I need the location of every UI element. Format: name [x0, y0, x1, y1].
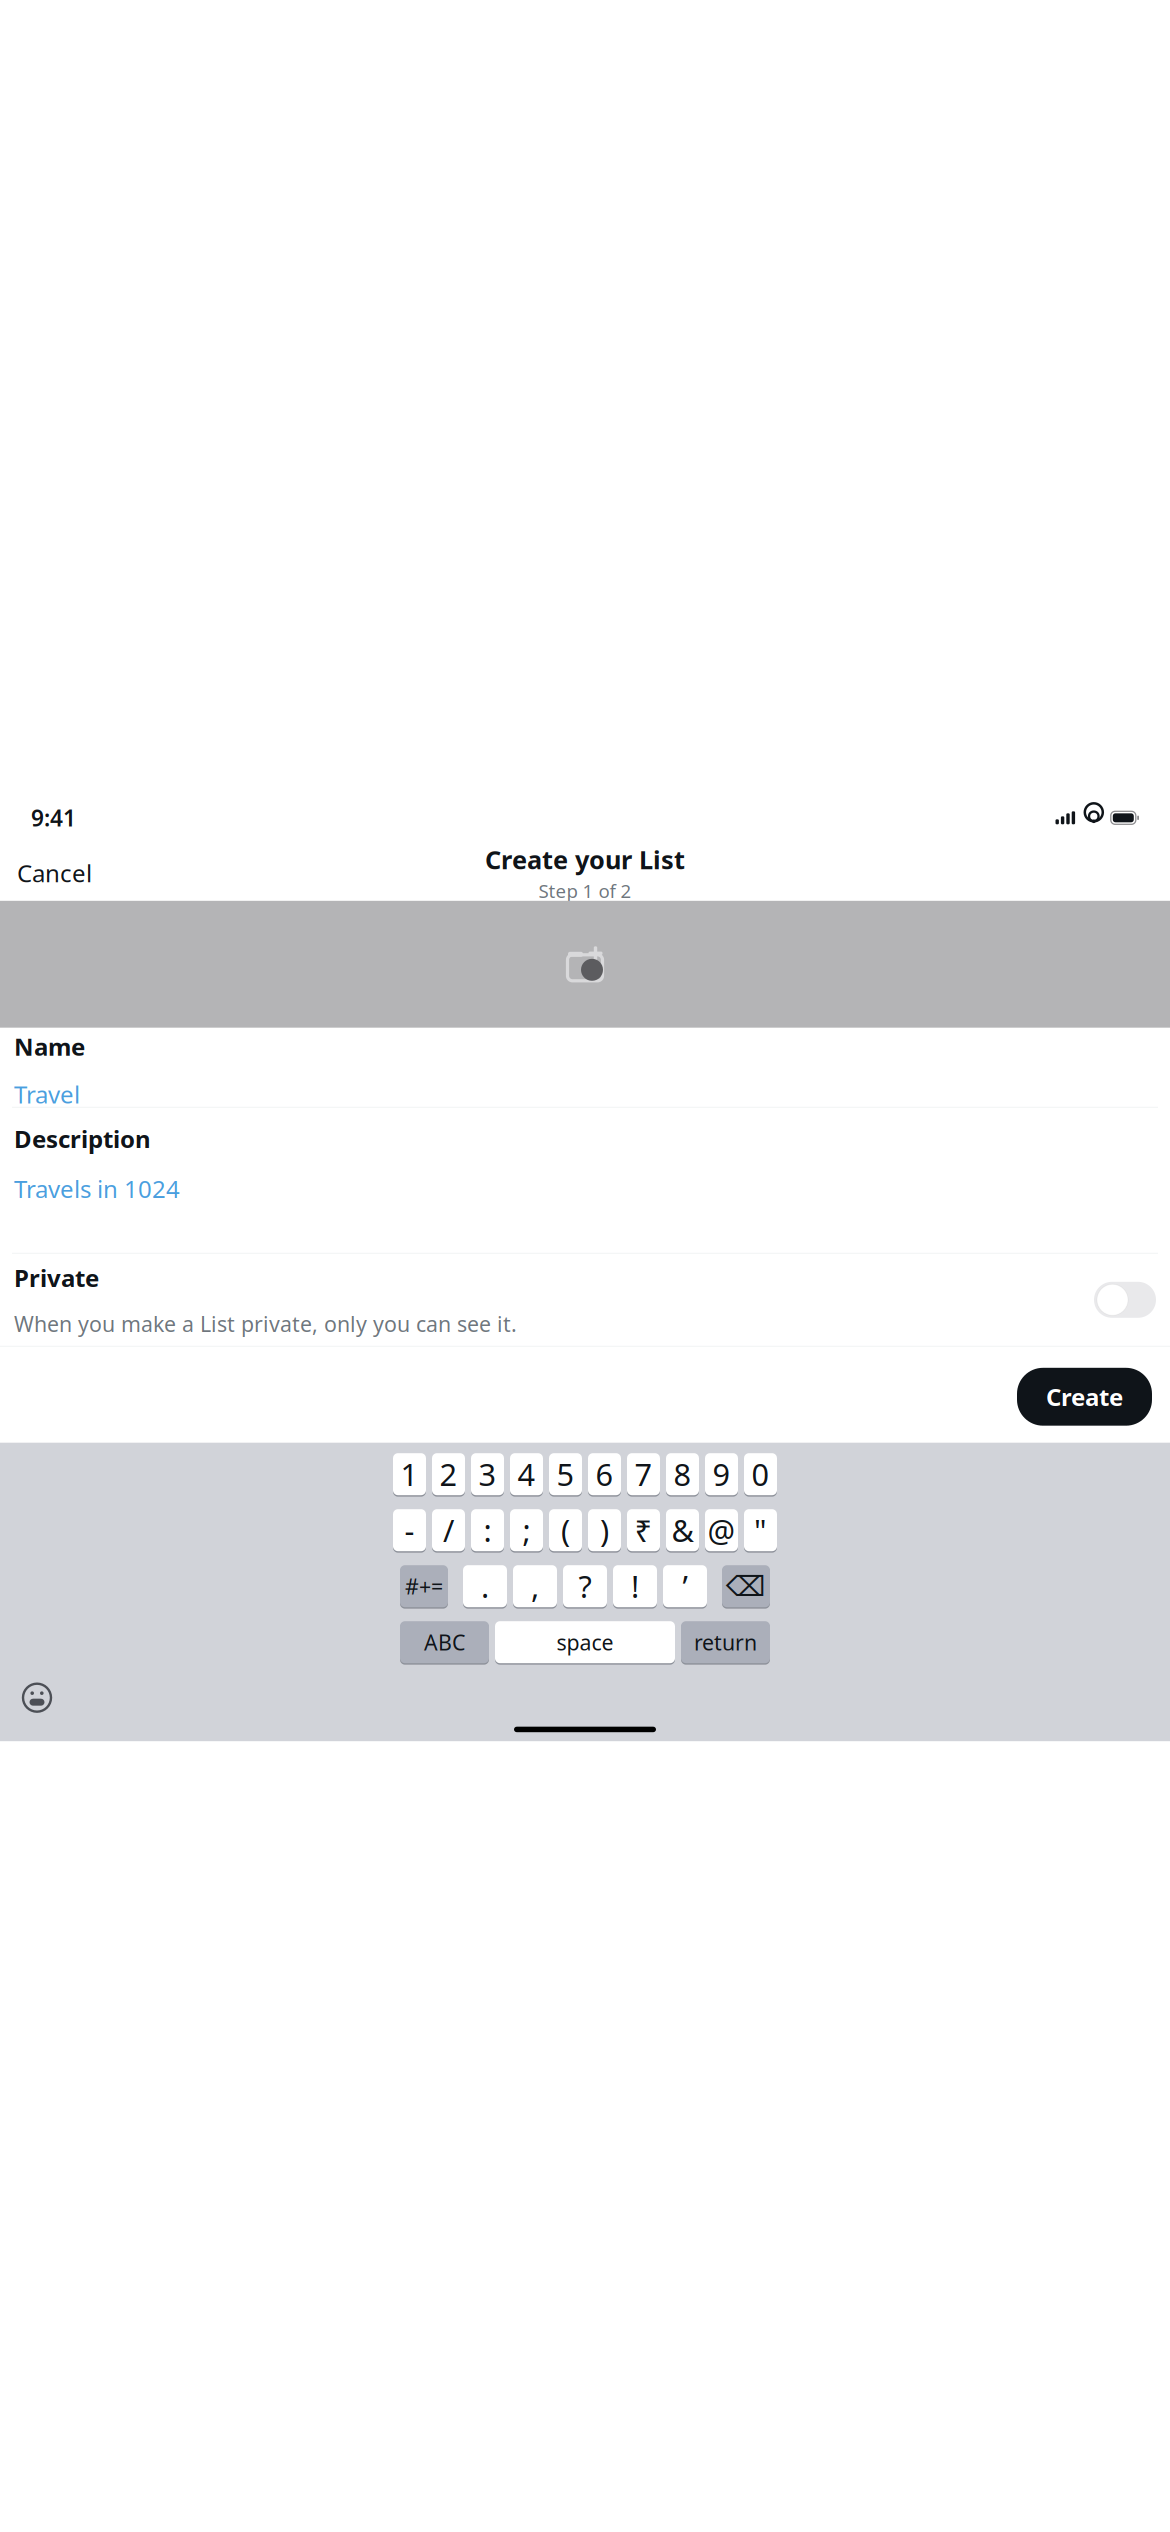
button[interactable]: Name	[0, 1028, 1170, 1107]
staticText: 6	[595, 1454, 613, 1494]
button[interactable]: return	[681, 1620, 770, 1665]
button[interactable]: Cancel	[3, 847, 106, 899]
button[interactable]: ?	[563, 1564, 607, 1609]
button[interactable]: Delete	[722, 1564, 770, 1609]
button[interactable]: 5	[549, 1452, 582, 1497]
staticText: @	[707, 1510, 735, 1550]
button[interactable]: 0	[744, 1452, 777, 1497]
staticText: "	[754, 1510, 767, 1550]
staticText: #+=	[405, 1572, 443, 1600]
button[interactable]: "	[744, 1508, 777, 1553]
button[interactable]: Add cover photo	[0, 901, 1170, 1028]
button[interactable]: Create	[1017, 1368, 1152, 1426]
button[interactable]: .	[463, 1564, 507, 1609]
staticText: ₹	[634, 1510, 652, 1550]
button[interactable]: Emoji keyboard	[16, 1677, 58, 1719]
button[interactable]: 3	[471, 1452, 504, 1497]
button[interactable]: )	[588, 1508, 621, 1553]
button[interactable]: ,	[513, 1564, 557, 1609]
button[interactable]: -	[393, 1508, 426, 1553]
button[interactable]: !	[613, 1564, 657, 1609]
button[interactable]: space	[495, 1620, 675, 1665]
button[interactable]: 4	[510, 1452, 543, 1497]
button[interactable]: 7	[627, 1452, 660, 1497]
staticText: ’	[682, 1566, 687, 1606]
staticText: .	[481, 1566, 489, 1606]
staticText: Description	[14, 1123, 151, 1155]
staticText: Create	[1046, 1381, 1123, 1413]
button[interactable]: 8	[666, 1452, 699, 1497]
staticText: -	[404, 1510, 414, 1550]
button[interactable]: /	[432, 1508, 465, 1553]
staticText: &	[671, 1510, 693, 1550]
button[interactable]: (	[549, 1508, 582, 1553]
button[interactable]: 6	[588, 1452, 621, 1497]
staticText: 4	[517, 1454, 535, 1494]
staticText: Travel	[14, 1078, 80, 1110]
button[interactable]: ₹	[627, 1508, 660, 1553]
staticText: 5	[556, 1454, 574, 1494]
staticText: 0	[751, 1454, 769, 1494]
staticText: When you make a List private, only you c…	[14, 1310, 517, 1338]
staticText: )	[600, 1510, 609, 1550]
staticText: Cancel	[17, 857, 92, 889]
button[interactable]: Private	[0, 1254, 1170, 1346]
staticText: :	[483, 1510, 491, 1550]
button[interactable]: ABC	[400, 1620, 489, 1665]
staticText: 9:41	[31, 803, 76, 833]
staticText: /	[443, 1510, 454, 1550]
button[interactable]: Description	[0, 1108, 1170, 1253]
staticText: (	[561, 1510, 570, 1550]
staticText: 3	[478, 1454, 496, 1494]
staticText: Private	[14, 1262, 99, 1294]
button[interactable]: :	[471, 1508, 504, 1553]
staticText: 7	[634, 1454, 652, 1494]
staticText: ?	[578, 1566, 591, 1606]
button[interactable]: 1	[393, 1452, 426, 1497]
button[interactable]: ;	[510, 1508, 543, 1553]
staticText: ABC	[424, 1628, 465, 1656]
staticText: Step 1 of 2	[538, 878, 631, 903]
staticText: return	[694, 1628, 757, 1656]
staticText: 1	[400, 1454, 418, 1494]
staticText: 9	[712, 1454, 730, 1494]
staticText: Create your List	[485, 843, 685, 876]
staticText: !	[631, 1566, 639, 1606]
staticText: Travels in 1024	[14, 1173, 180, 1205]
staticText: Name	[14, 1030, 85, 1062]
staticText: ;	[522, 1510, 530, 1550]
staticText: 2	[439, 1454, 457, 1494]
button[interactable]: @	[705, 1508, 738, 1553]
button[interactable]: ’	[663, 1564, 707, 1609]
staticText: ,	[531, 1566, 539, 1606]
button[interactable]: &	[666, 1508, 699, 1553]
button[interactable]: #+=	[400, 1564, 448, 1609]
staticText: 8	[673, 1454, 691, 1494]
staticText: space	[556, 1628, 613, 1656]
staticText: ⌫	[726, 1570, 766, 1602]
button[interactable]: 2	[432, 1452, 465, 1497]
button[interactable]: 9	[705, 1452, 738, 1497]
